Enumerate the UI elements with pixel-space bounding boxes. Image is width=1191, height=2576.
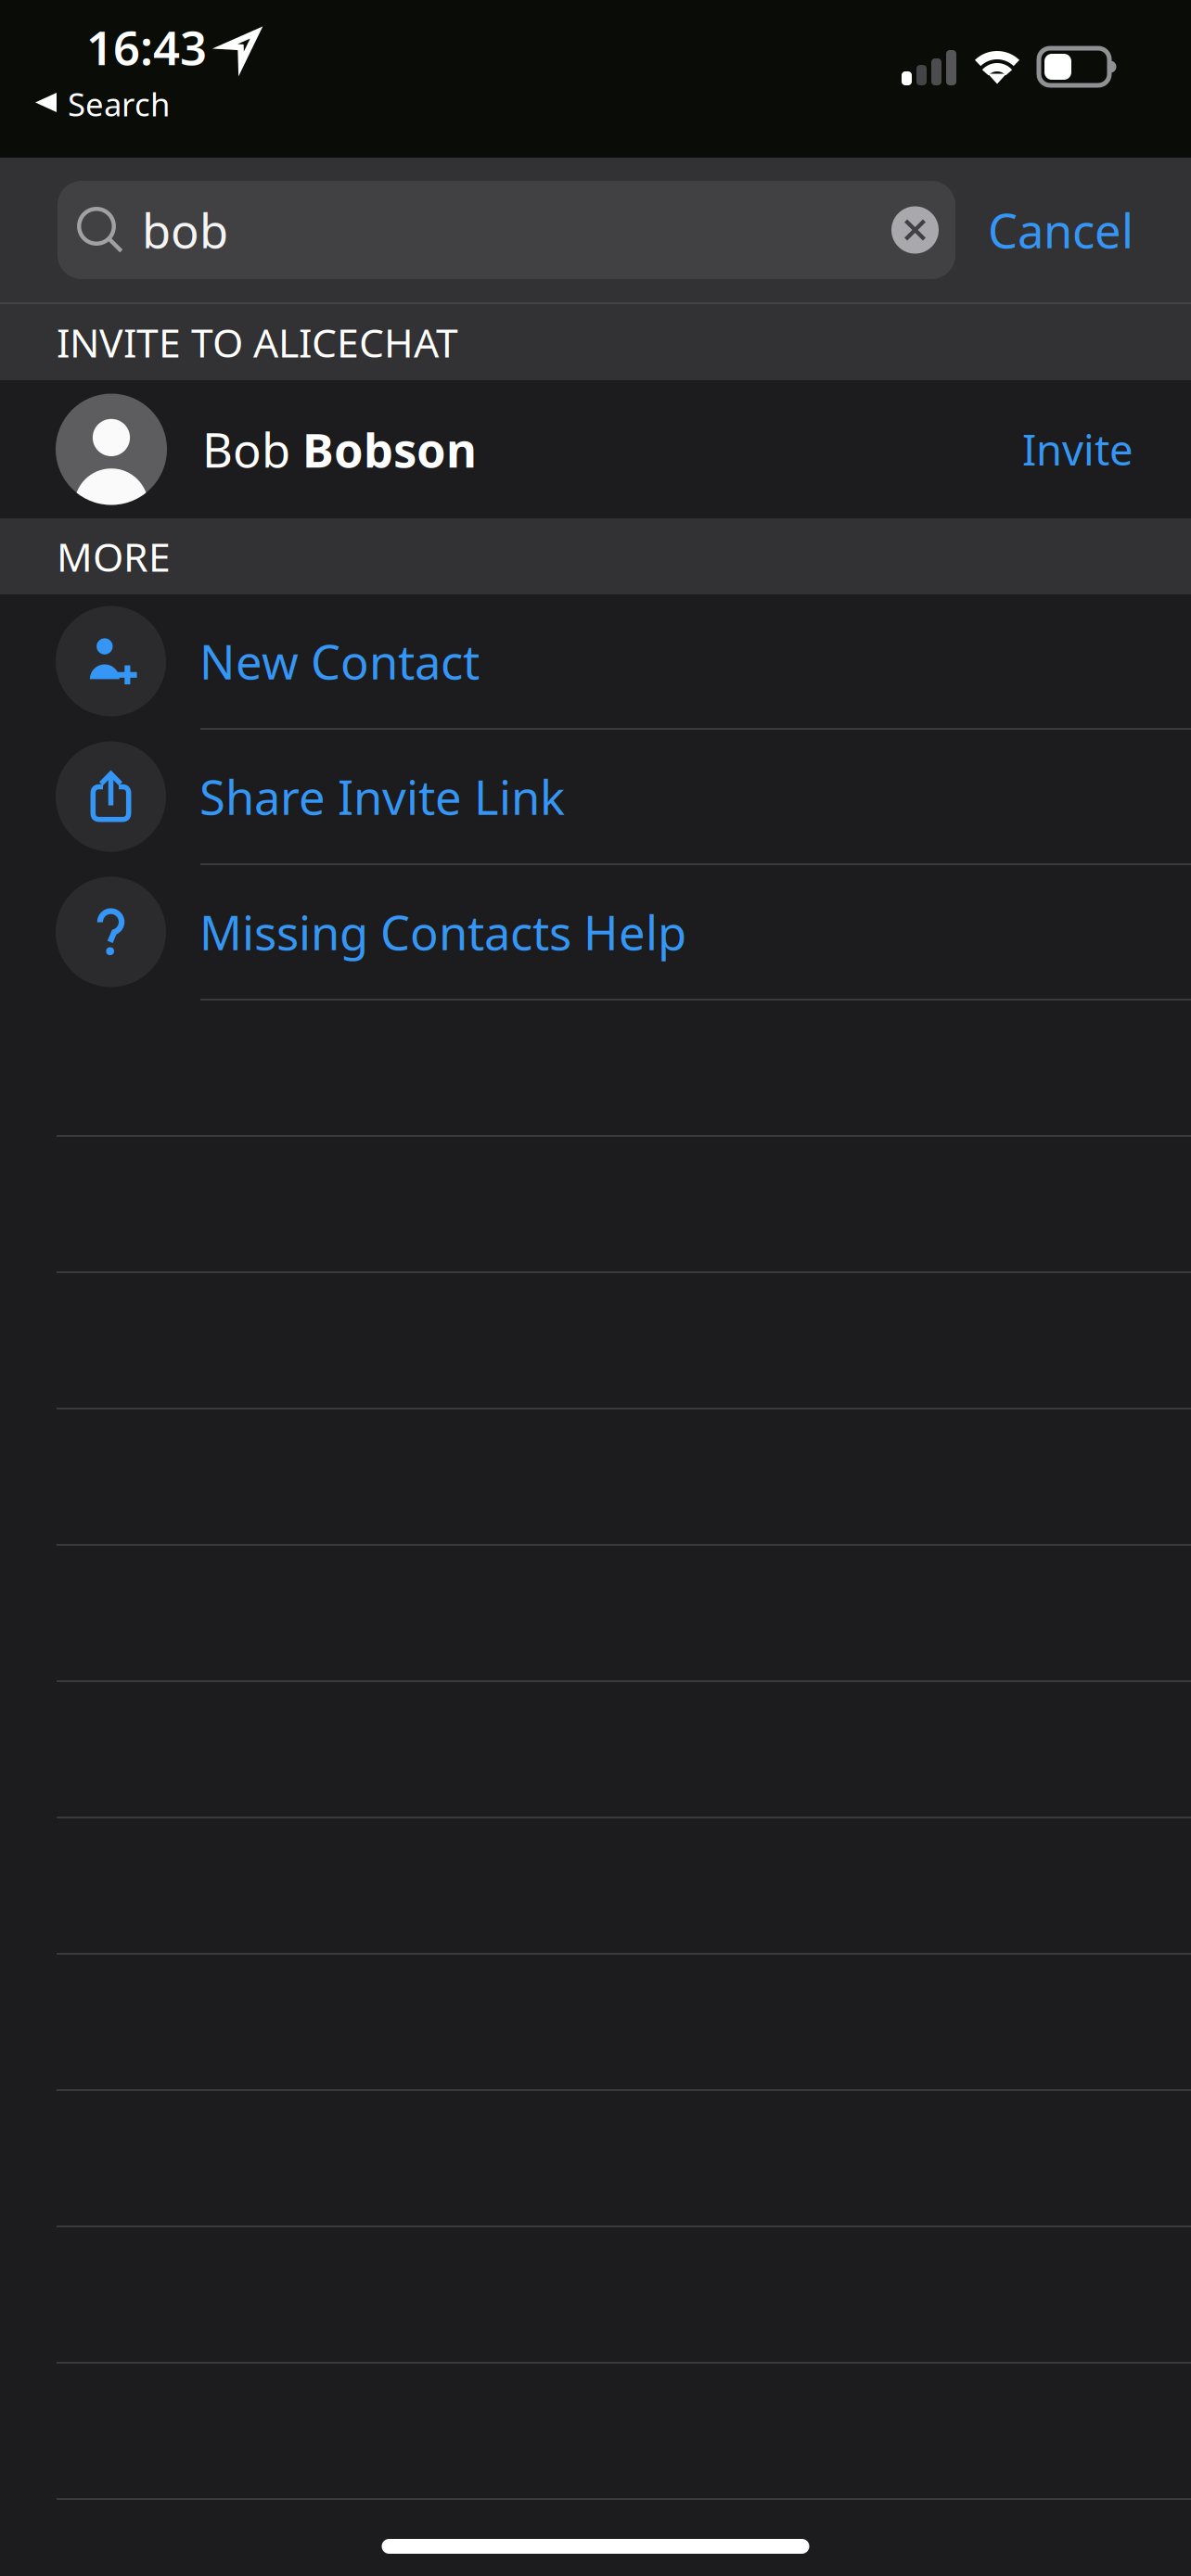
button[interactable]: Search bbox=[0, 83, 167, 125]
staticText: Share Invite Link bbox=[199, 765, 565, 828]
button[interactable]: Missing Contacts Help bbox=[0, 865, 1191, 1001]
button[interactable]: New Contact bbox=[0, 594, 1191, 730]
button[interactable]: Share Invite Link bbox=[0, 730, 1191, 865]
button[interactable]: Bob bbox=[0, 380, 1191, 518]
staticText: Invite bbox=[1022, 421, 1133, 477]
staticText: MORE bbox=[57, 530, 171, 583]
staticText: Cancel bbox=[988, 199, 1133, 261]
staticText: 16:43 bbox=[86, 16, 207, 78]
staticText: New Contact bbox=[199, 630, 480, 692]
staticText: Bobson bbox=[302, 418, 477, 481]
staticText: Bob bbox=[202, 418, 302, 481]
staticText: Search bbox=[68, 83, 170, 125]
button[interactable]: Clear search text bbox=[891, 206, 955, 254]
staticText: Missing Contacts Help bbox=[199, 901, 686, 963]
staticText: bob bbox=[142, 199, 228, 261]
button[interactable]: Cancel bbox=[969, 199, 1191, 261]
staticText: INVITE TO ALICECHAT bbox=[57, 316, 458, 369]
